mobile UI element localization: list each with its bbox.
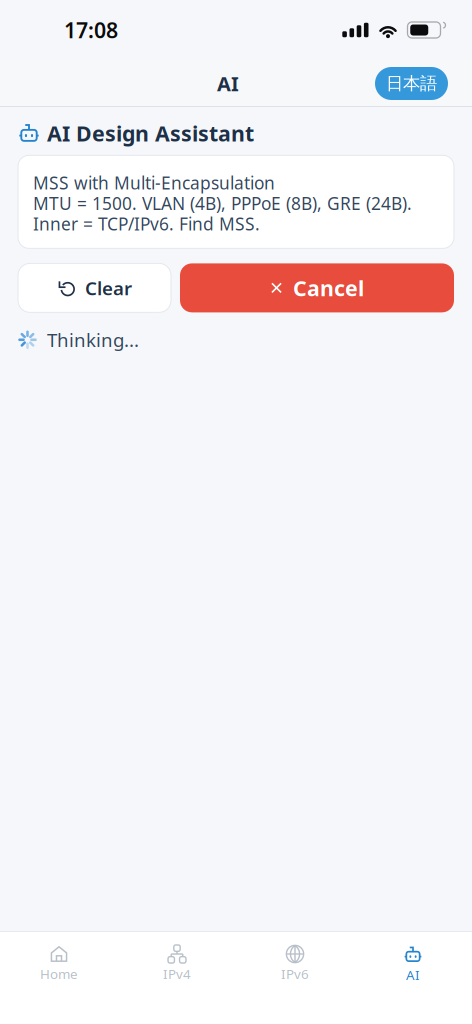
staticText: Home xyxy=(40,965,78,983)
button[interactable]: 日本語 xyxy=(375,67,448,100)
staticText: Thinking... xyxy=(47,327,139,352)
staticText: 日本語 xyxy=(386,73,437,94)
staticText: IPv4 xyxy=(163,965,191,983)
staticText: Clear xyxy=(85,275,132,300)
staticText: AI xyxy=(217,70,239,97)
button[interactable]: Cancel xyxy=(180,263,454,312)
button[interactable]: Clear xyxy=(18,263,171,312)
staticText: AI xyxy=(406,966,420,984)
button[interactable]: IPv4 xyxy=(118,931,236,1024)
staticText: Cancel xyxy=(293,274,364,302)
button[interactable]: Home xyxy=(0,931,118,1024)
button[interactable]: IPv6 xyxy=(236,931,354,1024)
staticText: AI Design Assistant xyxy=(47,119,254,147)
staticText: 17:08 xyxy=(64,16,118,44)
staticText: Inner = TCP/IPv6. Find MSS. xyxy=(33,212,260,235)
staticText: MSS with Multi-Encapsulation xyxy=(33,171,275,194)
staticText: IPv6 xyxy=(281,965,309,983)
button[interactable]: AI xyxy=(354,931,472,1024)
staticText: MTU = 1500. VLAN (4B), PPPoE (8B), GRE (… xyxy=(33,192,412,215)
